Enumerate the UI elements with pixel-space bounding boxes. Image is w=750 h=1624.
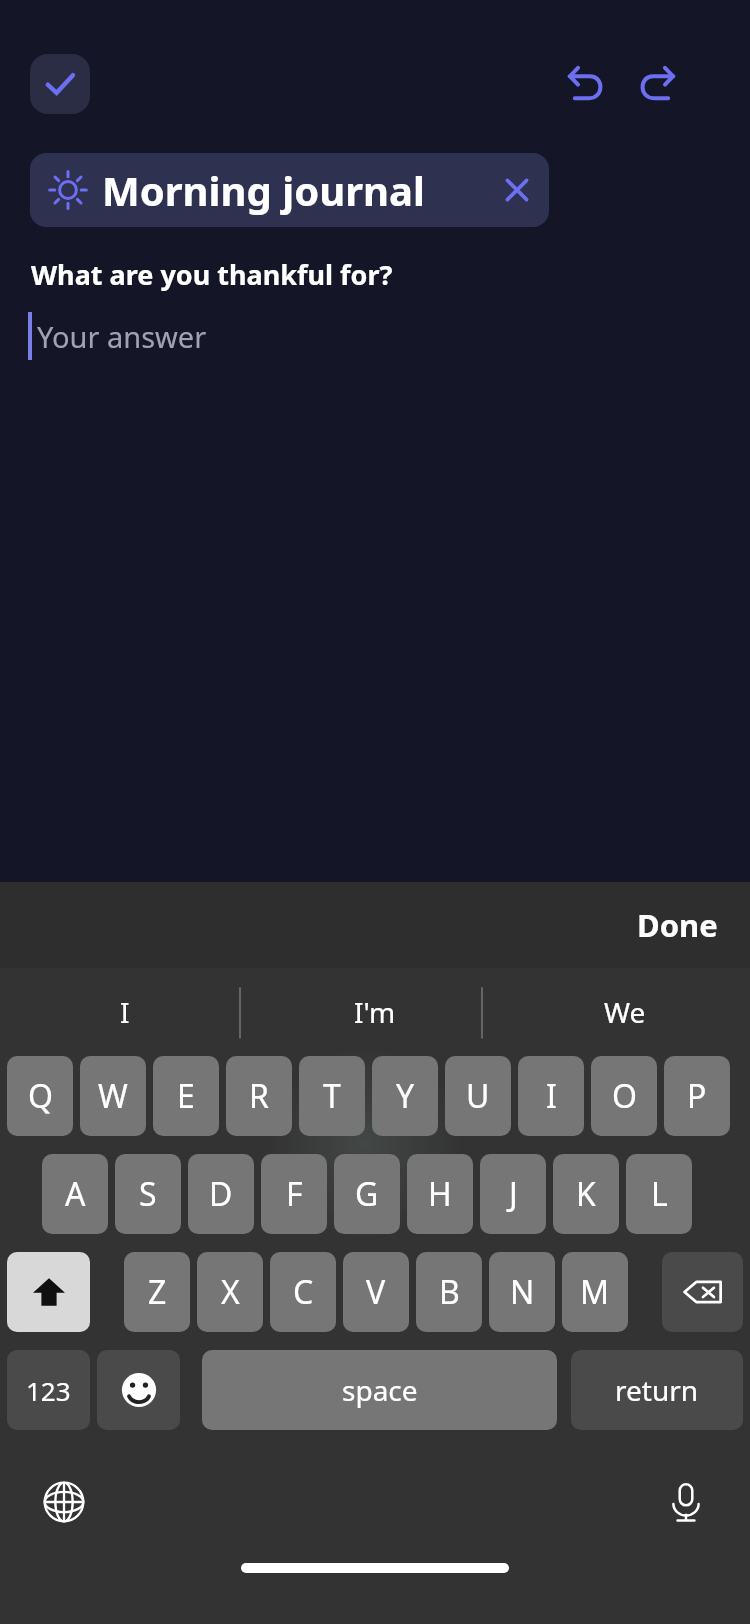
staticText: We [604, 993, 646, 1031]
staticText: S [139, 1172, 157, 1216]
button[interactable]: 123 [7, 1350, 90, 1430]
button[interactable]: Y [372, 1056, 438, 1136]
button[interactable]: Voice input [654, 1470, 718, 1534]
button[interactable]: D [188, 1154, 254, 1234]
staticText: T [323, 1074, 341, 1118]
button[interactable]: R [226, 1056, 292, 1136]
staticText: Morning journal [102, 163, 425, 217]
button[interactable]: Emoji [97, 1350, 180, 1430]
staticText: M [580, 1270, 610, 1314]
button[interactable]: X [197, 1252, 263, 1332]
staticText: P [687, 1074, 707, 1118]
button[interactable]: Change keyboard language [32, 1470, 96, 1534]
staticText: B [439, 1270, 460, 1314]
staticText: D [209, 1172, 233, 1216]
staticText: space [342, 1371, 418, 1409]
button[interactable]: Z [124, 1252, 190, 1332]
button[interactable]: G [334, 1154, 400, 1234]
staticText: O [612, 1074, 637, 1118]
staticText: V [366, 1270, 386, 1314]
staticText: L [651, 1172, 668, 1216]
staticText: return [615, 1371, 699, 1409]
button[interactable]: N [489, 1252, 555, 1332]
button[interactable]: Q [7, 1056, 73, 1136]
button[interactable]: Shift [7, 1252, 90, 1332]
staticText: What are you thankful for? [31, 256, 393, 293]
button[interactable]: B [416, 1252, 482, 1332]
staticText: K [576, 1172, 596, 1216]
button[interactable]: A [42, 1154, 108, 1234]
button[interactable]: C [270, 1252, 336, 1332]
staticText: I'm [354, 993, 396, 1031]
button[interactable]: Your answer [28, 305, 428, 367]
button[interactable]: I [518, 1056, 584, 1136]
button[interactable]: Remove tag [489, 162, 545, 218]
staticText: H [428, 1172, 452, 1216]
button[interactable]: J [480, 1154, 546, 1234]
button[interactable]: I'm [250, 968, 500, 1056]
staticText: Done [637, 904, 718, 946]
staticText: 123 [26, 1373, 71, 1408]
staticText: F [286, 1172, 303, 1216]
staticText: Your answer [37, 317, 207, 356]
staticText: C [293, 1270, 314, 1314]
button[interactable]: U [445, 1056, 511, 1136]
button[interactable]: Backspace [662, 1252, 743, 1332]
staticText: X [221, 1270, 240, 1314]
button[interactable]: S [115, 1154, 181, 1234]
staticText: W [98, 1074, 128, 1118]
staticText: I [120, 993, 130, 1031]
button[interactable]: space [202, 1350, 557, 1430]
staticText: I [546, 1074, 557, 1118]
staticText: E [177, 1074, 195, 1118]
staticText: A [65, 1172, 86, 1216]
button[interactable]: P [664, 1056, 730, 1136]
button[interactable]: T [299, 1056, 365, 1136]
staticText: R [249, 1074, 269, 1118]
button[interactable]: Redo [627, 53, 687, 113]
staticText: N [510, 1270, 535, 1314]
button[interactable]: I [0, 968, 250, 1056]
staticText: U [466, 1074, 490, 1118]
button[interactable]: L [626, 1154, 692, 1234]
button[interactable]: V [343, 1252, 409, 1332]
button[interactable]: Undo [556, 53, 616, 113]
staticText: J [509, 1172, 518, 1216]
staticText: Y [396, 1074, 415, 1118]
button[interactable]: Morning journal [30, 153, 549, 227]
button[interactable]: K [553, 1154, 619, 1234]
staticText: G [355, 1172, 379, 1216]
button[interactable]: M [562, 1252, 628, 1332]
staticText: Z [148, 1270, 167, 1314]
button[interactable]: E [153, 1056, 219, 1136]
staticText: Q [28, 1074, 53, 1118]
button[interactable]: O [591, 1056, 657, 1136]
button[interactable]: Save [30, 54, 90, 114]
button[interactable]: Done [637, 904, 718, 946]
button[interactable]: return [571, 1350, 743, 1430]
button[interactable]: W [80, 1056, 146, 1136]
button[interactable]: H [407, 1154, 473, 1234]
button[interactable]: We [500, 968, 750, 1056]
button[interactable]: F [261, 1154, 327, 1234]
